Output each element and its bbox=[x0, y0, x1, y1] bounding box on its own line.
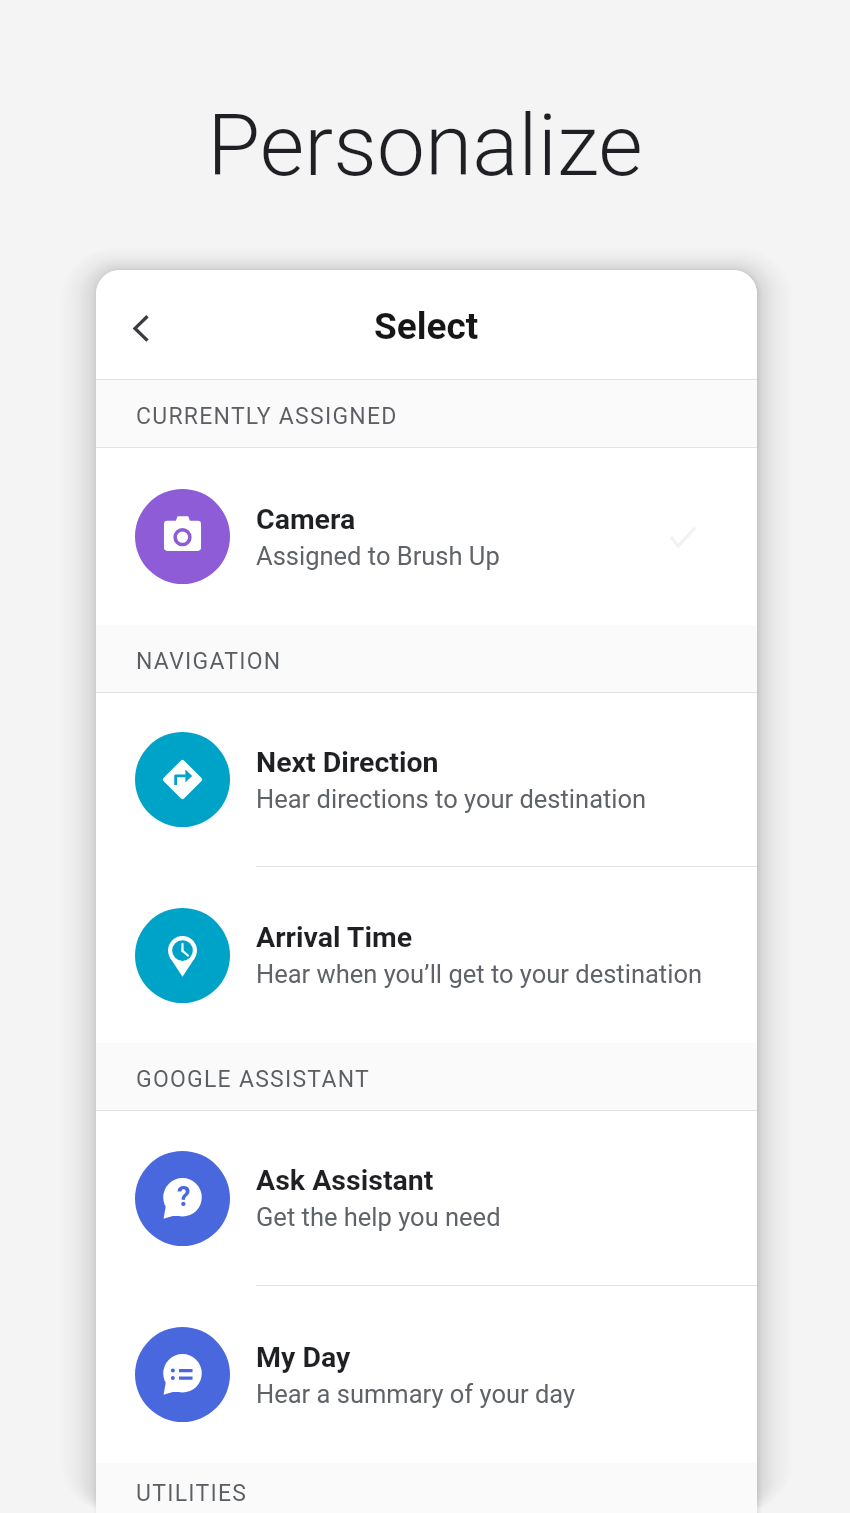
staticText: GOOGLE ASSISTANT bbox=[136, 1066, 371, 1093]
button[interactable]: Back bbox=[110, 295, 170, 355]
staticText: Next Direction bbox=[256, 746, 439, 779]
staticText: Hear when you’ll get to your destination bbox=[256, 959, 703, 989]
staticText: CURRENTLY ASSIGNED bbox=[136, 403, 398, 430]
staticText: Camera bbox=[256, 503, 356, 536]
staticText: ? bbox=[177, 1181, 191, 1213]
staticText: Arrival Time bbox=[256, 921, 413, 954]
staticText: NAVIGATION bbox=[136, 648, 282, 675]
staticText: My Day bbox=[256, 1341, 351, 1374]
staticText: Ask Assistant bbox=[256, 1164, 434, 1197]
staticText: Assigned to Brush Up bbox=[256, 541, 500, 571]
staticText: Select bbox=[374, 305, 479, 348]
button[interactable]: Camera bbox=[96, 448, 757, 625]
staticText: UTILITIES bbox=[136, 1480, 248, 1507]
staticText: Hear directions to your destination bbox=[256, 784, 647, 814]
button[interactable]: Arrival Time bbox=[96, 867, 757, 1043]
button[interactable]: My Day bbox=[96, 1286, 757, 1463]
staticText: Personalize bbox=[0, 95, 850, 196]
staticText: Get the help you need bbox=[256, 1202, 501, 1232]
button[interactable]: Next Direction bbox=[96, 693, 757, 866]
staticText: Hear a summary of your day bbox=[256, 1379, 576, 1409]
button[interactable]: ? bbox=[96, 1111, 757, 1285]
